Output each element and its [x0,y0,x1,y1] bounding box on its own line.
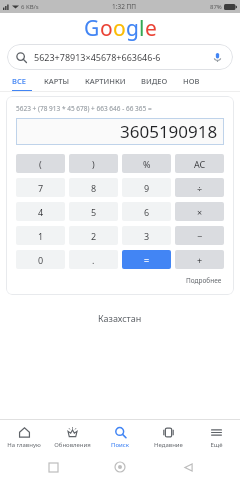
other: Search [16,52,27,63]
staticText: Ещё [210,441,223,449]
staticText: Обновления [54,441,91,449]
staticText: 7 [38,182,44,194]
staticText: = [144,254,150,266]
staticText: 9 [144,182,150,194]
staticText: 6 KB/s [21,3,39,11]
staticText: o [113,14,126,43]
button[interactable]: . [69,250,118,269]
button[interactable]: Подробнее [184,274,224,287]
button[interactable]: − [175,226,224,245]
staticText: ВСЕ [12,76,26,86]
button[interactable]: + [175,250,224,269]
staticText: ) [92,158,95,170]
staticText: % [143,158,151,170]
staticText: AC [194,158,206,170]
button[interactable]: Back [173,454,203,480]
button[interactable]: Voice search [210,50,224,64]
staticText: 5623 + (78 913 * 45 678) + 663 646 - 66 … [16,104,224,113]
staticText: 2 [91,230,97,242]
staticText: 1:32 ПП [112,2,137,11]
button[interactable]: 2 [69,226,118,245]
button[interactable]: Search [96,420,144,454]
staticText: Недавние [154,441,183,449]
button[interactable]: 9 [122,178,171,197]
staticText: 3605190918 [120,120,218,143]
button[interactable]: Home [0,420,48,454]
staticText: 5623+78913×45678+663646-6 [34,51,161,63]
button[interactable]: 7 [16,178,65,197]
staticText: + [197,254,203,266]
button[interactable]: 0 [16,250,65,269]
other: Recent [162,426,175,439]
button[interactable]: КАРТИНКИ [85,70,126,92]
staticText: − [197,230,203,242]
other: Updates [66,426,79,439]
staticText: 4 [38,206,44,218]
staticText: e [145,14,157,43]
button[interactable]: Recent [144,420,192,454]
staticText: l [139,14,145,43]
button[interactable]: 5 [69,202,118,221]
staticText: ÷ [197,182,203,194]
button[interactable]: ÷ [175,178,224,197]
staticText: 8 [91,182,97,194]
staticText: КАРТИНКИ [85,76,126,86]
staticText: 5 [91,206,97,218]
staticText: КАРТЫ [44,76,70,86]
staticText: G [84,14,100,43]
button[interactable]: More [192,420,240,454]
staticText: На главную [7,441,41,449]
staticText: g [126,14,139,43]
staticText: Подробнее [186,276,222,285]
staticText: ( [39,158,42,170]
button[interactable]: 6 [122,202,171,221]
button[interactable]: ( [16,154,65,173]
button[interactable]: КАРТЫ [44,70,70,92]
button[interactable]: 3 [122,226,171,245]
staticText: 1 [38,230,44,242]
staticText: НОВ [183,76,200,86]
button[interactable]: 4 [16,202,65,221]
button[interactable]: × [175,202,224,221]
button[interactable]: ВИДЕО [141,70,168,92]
staticText: 6 [144,206,150,218]
button[interactable]: % [122,154,171,173]
button[interactable]: Home [105,454,135,480]
staticText: . [92,254,95,266]
button[interactable]: 8 [69,178,118,197]
button[interactable]: ВСЕ [12,70,26,92]
staticText: 87% [210,3,222,11]
button[interactable]: Updates [48,420,96,454]
other: Search [114,426,127,439]
other: More [210,426,223,439]
staticText: ВИДЕО [141,76,168,86]
button[interactable]: ) [69,154,118,173]
button[interactable]: 1 [16,226,65,245]
staticText: 3 [144,230,150,242]
button[interactable]: AC [175,154,224,173]
button[interactable]: Search [7,44,233,70]
staticText: × [197,206,203,218]
button[interactable]: НОВ [183,70,200,92]
button[interactable]: = [122,250,171,269]
other: Home [18,426,31,439]
staticText: Казахстан [98,312,142,324]
button[interactable]: Recents [38,454,68,480]
staticText: Поиск [111,441,129,449]
staticText: 0 [38,254,44,266]
staticText: o [100,14,113,43]
